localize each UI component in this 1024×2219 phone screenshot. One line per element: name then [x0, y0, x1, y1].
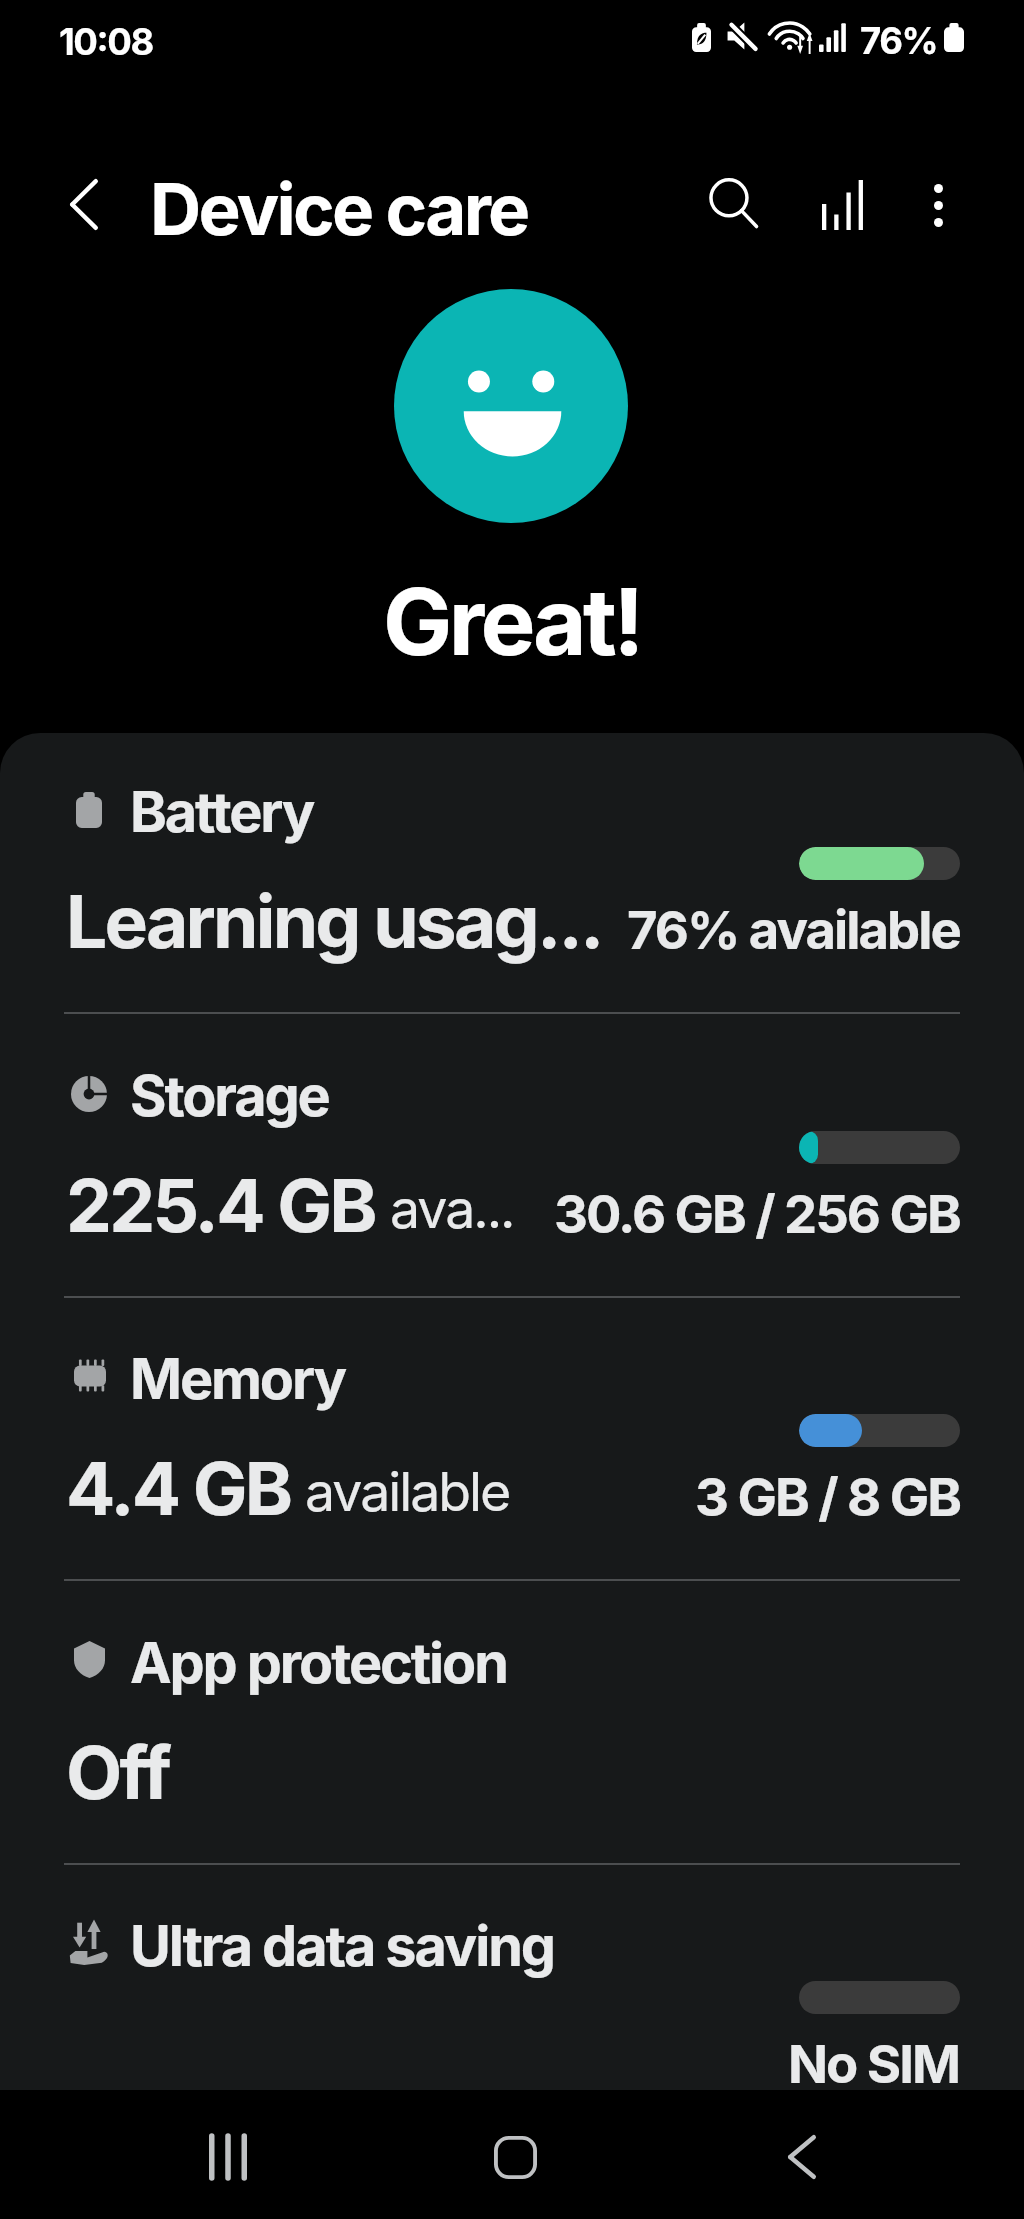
staticText: 4.4 GB: [66, 1444, 305, 1532]
staticText: 3 GB / 8 GB: [695, 1465, 960, 1529]
staticText: Great!: [383, 566, 642, 678]
staticText: available: [305, 1459, 510, 1524]
staticText: Battery: [130, 778, 314, 846]
staticText: Ultra data saving: [130, 1912, 554, 1980]
button[interactable]: [0, 1016, 1024, 1300]
staticText: 225.4 GB: [66, 1161, 390, 1249]
button[interactable]: Recent apps: [163, 2095, 293, 2219]
button[interactable]: [0, 732, 1024, 1016]
button[interactable]: [0, 1583, 1024, 1867]
staticText: Device care: [150, 166, 528, 252]
staticText: 76% available: [627, 898, 960, 962]
staticText: Memory: [130, 1345, 345, 1413]
button[interactable]: More options: [883, 150, 993, 260]
button[interactable]: Usage statistics: [787, 150, 897, 260]
button[interactable]: Back: [737, 2095, 867, 2219]
staticText: 76%: [860, 19, 938, 63]
staticText: Off: [66, 1728, 169, 1816]
staticText: App protection: [130, 1629, 507, 1697]
button[interactable]: Home: [450, 2095, 580, 2219]
button[interactable]: [0, 1866, 1024, 2150]
staticText: No SIM: [788, 2032, 960, 2096]
staticText: Learning usag...: [66, 877, 602, 965]
button[interactable]: Search: [679, 148, 789, 258]
button[interactable]: [0, 1299, 1024, 1583]
staticText: Storage: [130, 1062, 329, 1130]
button[interactable]: Navigate up: [29, 149, 139, 259]
staticText: ava...: [390, 1176, 514, 1241]
staticText: 10:08: [59, 20, 153, 64]
staticText: 30.6 GB / 256 GB: [554, 1182, 960, 1246]
